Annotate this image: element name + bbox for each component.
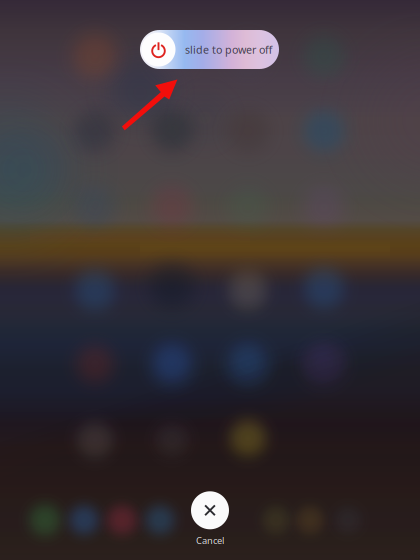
- button[interactable]: slide to power off: [140, 30, 279, 69]
- button[interactable]: Cancel: [191, 491, 229, 547]
- staticText: Cancel: [196, 534, 224, 547]
- staticText: slide to power off: [185, 42, 272, 57]
